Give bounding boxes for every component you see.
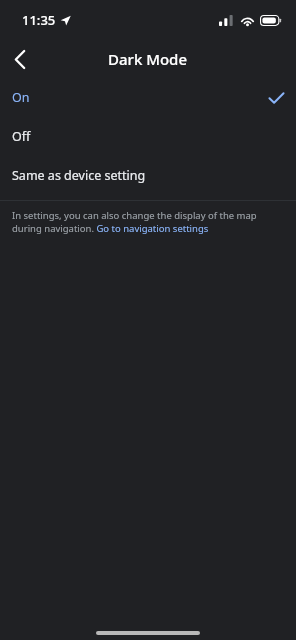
button[interactable]: Back: [0, 40, 40, 78]
staticText: Off: [12, 128, 31, 145]
staticText: On: [12, 89, 30, 106]
staticText: 11:35: [22, 11, 56, 29]
staticText: Same as device setting: [12, 167, 146, 184]
button[interactable]: On: [0, 78, 296, 117]
staticText: Dark Mode: [108, 49, 188, 69]
button[interactable]: In settings, you can also change the dis…: [0, 201, 296, 245]
button[interactable]: Off: [0, 117, 296, 156]
staticText: In settings, you can also change the dis…: [12, 209, 282, 235]
button[interactable]: Same as device setting: [0, 156, 296, 195]
